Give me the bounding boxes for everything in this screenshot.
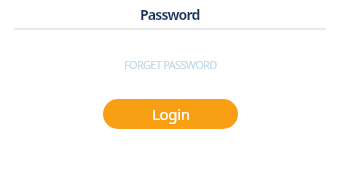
staticText: Login: [152, 104, 190, 124]
staticText: FORGET PASSWORD: [124, 57, 217, 72]
button[interactable]: Login: [103, 99, 238, 129]
staticText: Password: [140, 5, 200, 24]
button[interactable]: FORGET PASSWORD: [120, 53, 221, 76]
